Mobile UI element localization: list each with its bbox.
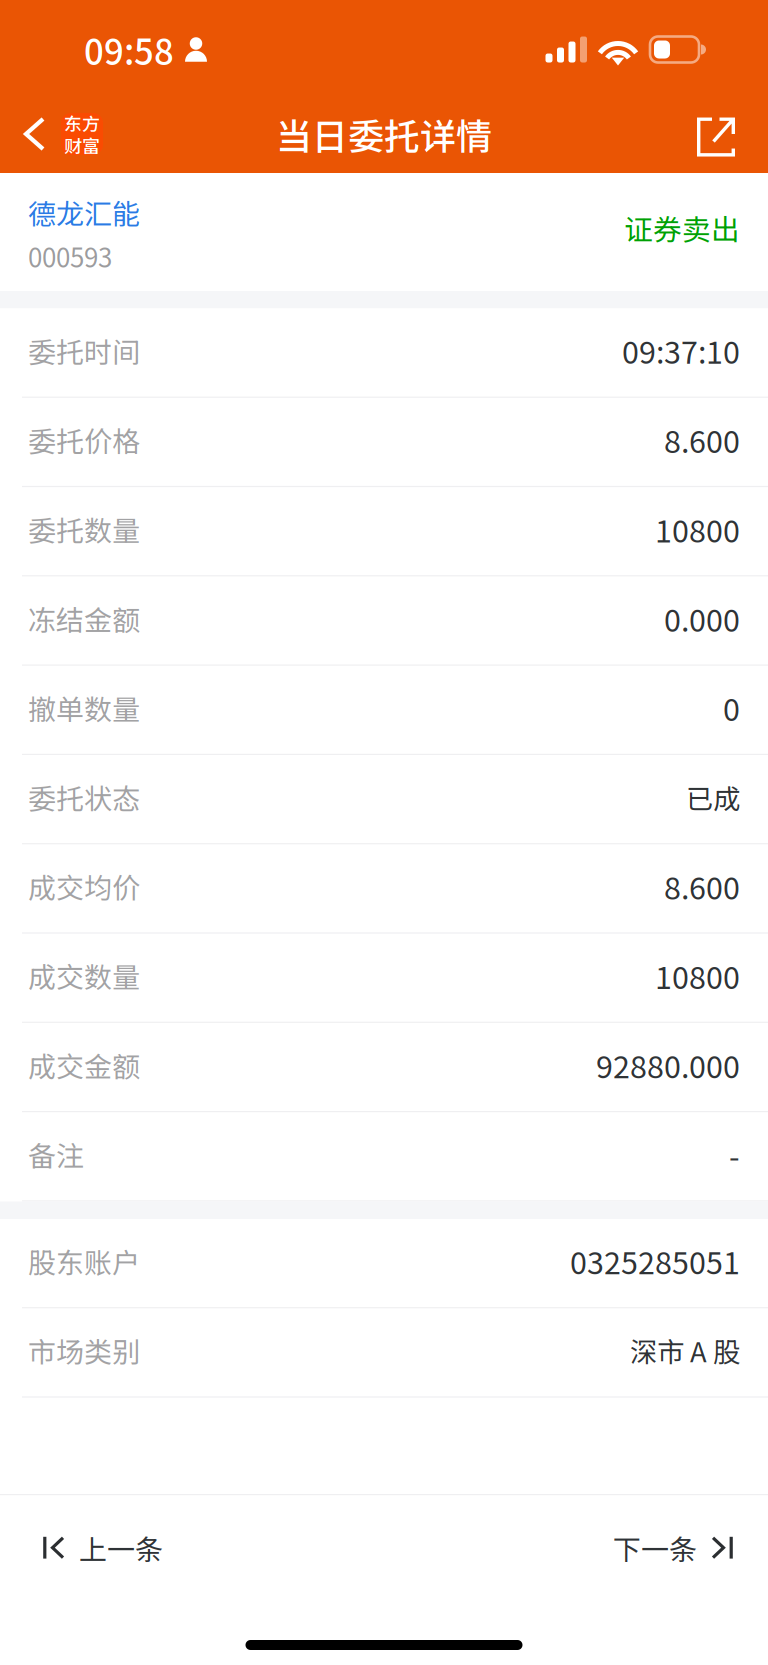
staticText: 深市 A 股 [630,1331,740,1370]
staticText: 市场类别 [28,1330,140,1371]
staticText: 委托数量 [28,509,140,549]
staticText: 备注 [28,1134,84,1174]
staticText: - [729,1132,740,1176]
staticText: 成交数量 [28,955,140,996]
staticText: 东方 [64,110,100,136]
staticText: 委托时间 [28,330,140,371]
staticText: 0.000 [664,596,740,640]
staticText: 10800 [655,954,740,998]
staticText: 上一条 [79,1527,163,1568]
staticText: 撤单数量 [28,687,140,728]
staticText: 委托价格 [28,420,140,460]
staticText: 0 [723,686,740,730]
staticText: 10800 [655,507,740,551]
staticText: 股东账户 [28,1241,140,1281]
staticText: 8.600 [664,418,740,462]
staticText: 成交金额 [28,1045,140,1085]
staticText: 下一条 [613,1527,697,1568]
staticText: 已成 [686,777,740,817]
staticText: 0325285051 [570,1239,740,1283]
staticText: 冻结金额 [28,598,140,639]
staticText: 成交均价 [28,866,140,907]
staticText: 000593 [28,237,112,275]
staticText: 证券卖出 [624,207,740,248]
staticText: 德龙汇能 [28,192,140,232]
staticText: 财富 [64,132,100,158]
staticText: 当日委托详情 [276,108,492,160]
staticText: 8.600 [664,864,740,908]
staticText: 09:37:10 [622,328,740,372]
button[interactable]: 返回 东方财富 [0,95,121,173]
button[interactable]: 下一条 [583,1495,768,1600]
button[interactable]: 上一条 [0,1495,193,1600]
button[interactable]: 分享 [671,95,768,173]
staticText: 委托状态 [28,777,140,817]
staticText: 92880.000 [596,1043,740,1087]
staticText: 09:58 [84,24,174,75]
